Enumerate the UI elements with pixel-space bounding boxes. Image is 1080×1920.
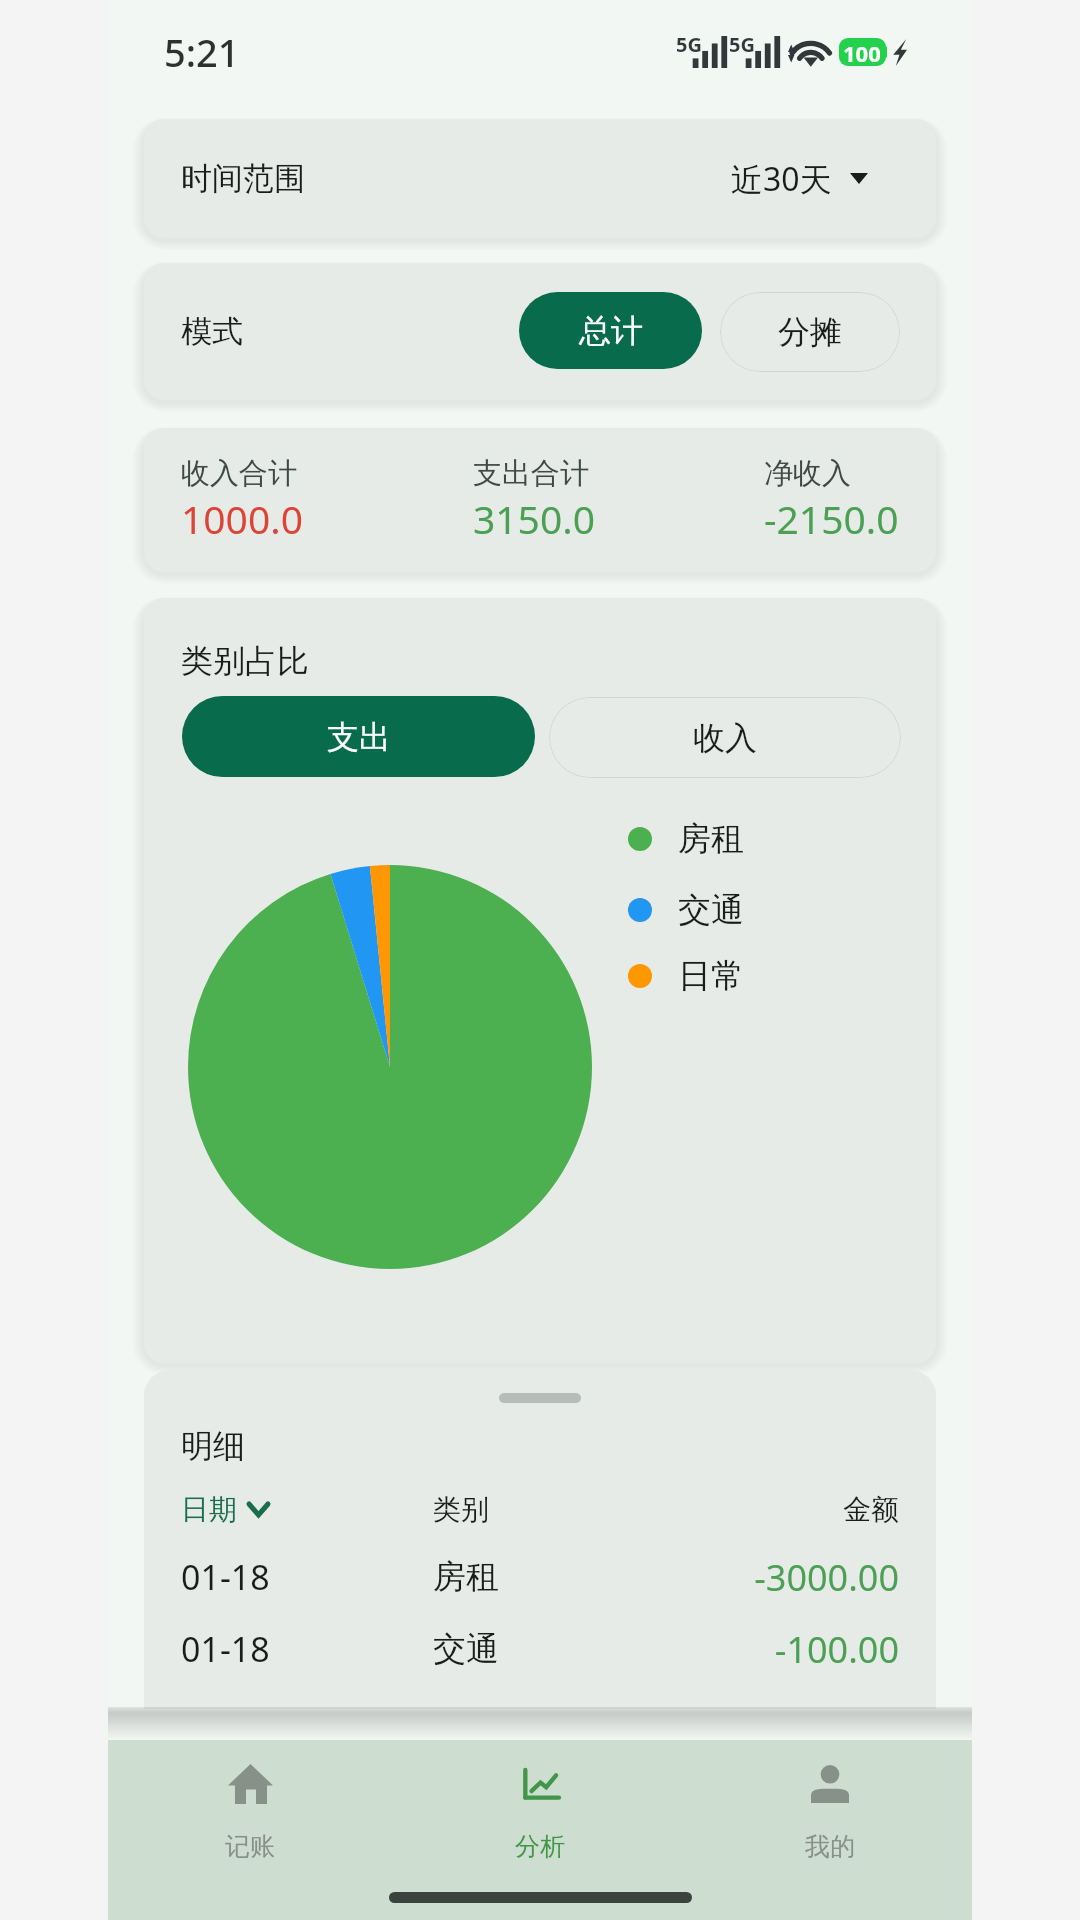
button[interactable]: 分析 [398, 1740, 682, 1920]
staticText: 3150.0 [473, 492, 595, 545]
button[interactable]: 记账 [108, 1740, 392, 1920]
button[interactable]: 房租 [628, 815, 744, 863]
staticText: 时间范围 [181, 159, 305, 198]
button[interactable]: 分摊 [720, 292, 900, 372]
staticText: -2150.0 [764, 492, 899, 545]
staticText: 01-18 [181, 1626, 433, 1672]
staticText: 分摊 [778, 312, 842, 352]
staticText: 1000.0 [181, 492, 303, 545]
staticText: 支出合计 [473, 455, 589, 492]
button[interactable]: 01-18 [181, 1624, 899, 1674]
button[interactable]: 日常 [628, 952, 744, 1000]
staticText: 房租 [433, 1556, 754, 1598]
staticText: 总计 [579, 311, 643, 351]
staticText: 金额 [843, 1492, 899, 1527]
staticText: 交通 [678, 889, 744, 931]
staticText: 我的 [805, 1831, 855, 1862]
staticText: 明细 [181, 1426, 245, 1466]
button[interactable]: 日期 [181, 1491, 433, 1527]
button[interactable]: 我的 [688, 1740, 972, 1920]
button[interactable]: 01-18 [181, 1552, 899, 1602]
staticText: 5G [676, 31, 702, 58]
staticText: 日常 [678, 955, 744, 997]
staticText: -100.00 [774, 1625, 899, 1674]
staticText: 收入 [693, 718, 757, 758]
button[interactable]: 交通 [628, 886, 744, 934]
staticText: 5G [729, 31, 755, 58]
staticText: 01-18 [181, 1554, 433, 1600]
staticText: 房租 [678, 818, 744, 860]
staticText: 记账 [225, 1831, 275, 1862]
staticText: 交通 [433, 1628, 774, 1670]
staticText: 类别占比 [181, 641, 309, 681]
staticText: 日期 [181, 1492, 237, 1527]
button[interactable]: 收入 [549, 697, 901, 778]
staticText: 净收入 [764, 455, 851, 492]
staticText: 分析 [515, 1831, 565, 1862]
button[interactable]: 总计 [519, 292, 702, 369]
staticText: 100 [843, 38, 881, 66]
button[interactable]: 支出 [182, 696, 535, 777]
staticText: 近30天 [731, 157, 832, 201]
staticText: -3000.00 [754, 1553, 899, 1602]
staticText: 5:21 [164, 26, 240, 78]
staticText: 支出 [327, 717, 391, 757]
staticText: 类别 [433, 1492, 843, 1527]
button[interactable]: 时间范围 [144, 119, 936, 238]
staticText: 收入合计 [181, 455, 297, 492]
staticText: 模式 [181, 312, 243, 351]
